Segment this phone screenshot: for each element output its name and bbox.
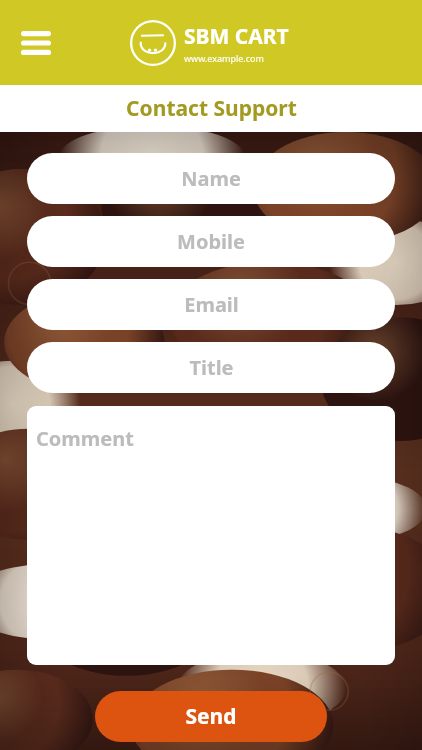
staticText: Title	[189, 354, 234, 381]
staticText: Send	[185, 702, 237, 731]
staticText: Name	[181, 165, 241, 192]
button[interactable]: Name	[27, 153, 395, 204]
button[interactable]: Send	[95, 691, 327, 742]
button[interactable]: Email	[27, 279, 395, 330]
button[interactable]: Title	[27, 342, 395, 393]
button[interactable]: Comment	[27, 406, 395, 665]
staticText: Comment	[36, 425, 134, 452]
button[interactable]: Open navigation menu	[14, 21, 58, 65]
staticText: SBM CART	[184, 22, 289, 51]
staticText: Email	[184, 291, 239, 318]
staticText: Contact Support	[126, 94, 297, 123]
staticText: www.example.com	[184, 52, 264, 64]
staticText: Mobile	[177, 228, 245, 255]
button[interactable]: Mobile	[27, 216, 395, 267]
button[interactable]: SBM Cart home	[130, 20, 289, 66]
